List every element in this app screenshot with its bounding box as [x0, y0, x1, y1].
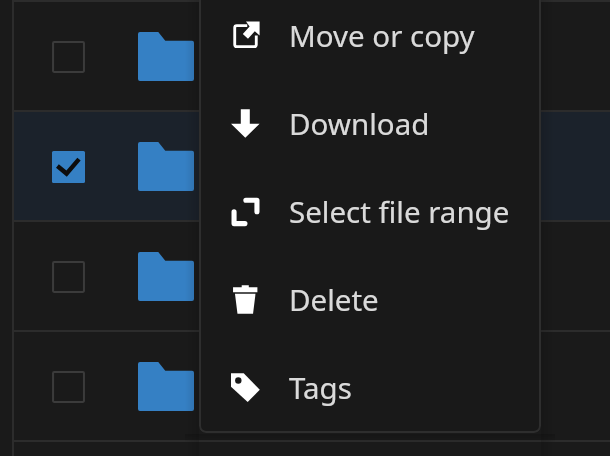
button[interactable]: Move or copy [199, 0, 541, 79]
button[interactable]: Selected [14, 112, 610, 220]
button[interactable]: Delete [199, 255, 541, 343]
button[interactable]: Select file range [199, 167, 541, 255]
button[interactable]: Tags [199, 343, 541, 431]
button[interactable]: Select item [52, 371, 85, 403]
staticText: Tags [289, 367, 352, 407]
button[interactable]: Select item [52, 261, 85, 293]
staticText: Move or copy [289, 15, 475, 55]
button[interactable]: Selected [52, 151, 85, 183]
staticText: Delete [289, 279, 379, 319]
button[interactable]: Select item [14, 2, 610, 110]
staticText: Download [289, 103, 430, 143]
button[interactable]: Select item [52, 41, 85, 73]
button[interactable]: Download [199, 79, 541, 167]
button[interactable]: Select item [14, 332, 610, 440]
button[interactable]: Select item [14, 222, 610, 330]
staticText: Select file range [289, 191, 510, 231]
